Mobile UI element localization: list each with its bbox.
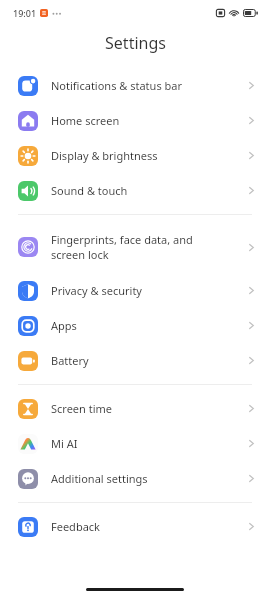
staticText: Home screen [51,113,247,128]
other: Feedback [18,517,38,537]
other: Privacy and security [18,281,38,301]
other: Sound and touch [18,181,38,201]
other: Apps [18,316,38,336]
staticText: Feedback [51,519,247,534]
staticText: Sound & touch [51,183,247,198]
staticText: Mi AI [51,436,247,451]
other: Display and brightness [18,146,38,166]
button[interactable]: Mi AI [0,426,270,461]
button[interactable]: Screen time [0,391,270,426]
staticText: Apps [51,318,247,333]
button[interactable]: Fingerprints, face data and screen lock [0,221,270,273]
button[interactable]: Apps [0,308,270,343]
button[interactable]: Privacy and security [0,273,270,308]
other: Battery [18,351,38,371]
button[interactable]: Display and brightness [0,138,270,173]
other: Fingerprints, face data and screen lock [18,237,38,257]
button[interactable]: Home screen [0,103,270,138]
staticText: Screen time [51,401,247,416]
other: Additional settings [18,469,38,489]
staticText: Notifications & status bar [51,78,247,93]
other: Mi AI [18,434,38,454]
staticText: Privacy & security [51,283,247,298]
other: Screen time [18,399,38,419]
staticText: Settings [105,32,166,54]
staticText: 19:01 [13,7,37,19]
button[interactable]: Sound and touch [0,173,270,208]
staticText: Additional settings [51,471,247,486]
button[interactable]: Feedback [0,509,270,544]
button[interactable]: Battery [0,343,270,378]
staticText: Battery [51,353,247,368]
staticText: Display & brightness [51,148,247,163]
other: Home screen [18,111,38,131]
button[interactable]: Additional settings [0,461,270,496]
button[interactable]: Notifications [0,68,270,103]
staticText: Fingerprints, face data, and screen lock [51,232,247,262]
other: Notifications [18,76,38,96]
